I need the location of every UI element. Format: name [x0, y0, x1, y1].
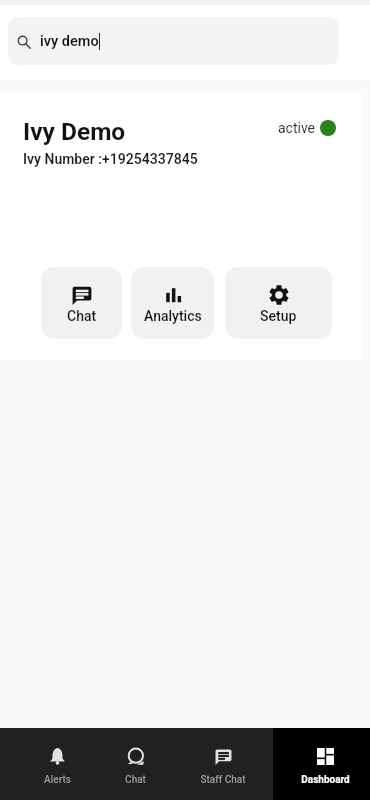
button[interactable]: Staff Chat: [173, 728, 273, 800]
staticText: Chat: [125, 774, 146, 786]
staticText: Chat: [67, 308, 97, 324]
button[interactable]: Chat: [98, 728, 173, 800]
staticText: ivy demo: [40, 33, 99, 50]
button[interactable]: ivy demo: [8, 17, 339, 65]
button[interactable]: Analytics: [131, 267, 214, 339]
staticText: Ivy Number :+19254337845: [23, 151, 198, 167]
button[interactable]: Chat: [41, 267, 122, 339]
staticText: Staff Chat: [200, 774, 246, 786]
staticText: Setup: [260, 308, 297, 324]
button[interactable]: Setup: [225, 267, 332, 339]
staticText: active: [278, 120, 316, 136]
staticText: Alerts: [44, 774, 71, 786]
button[interactable]: Dashboard: [273, 728, 370, 800]
staticText: Ivy Demo: [23, 117, 126, 146]
staticText: Analytics: [144, 308, 202, 324]
staticText: Dashboard: [301, 774, 350, 786]
button[interactable]: Alerts: [17, 728, 98, 800]
